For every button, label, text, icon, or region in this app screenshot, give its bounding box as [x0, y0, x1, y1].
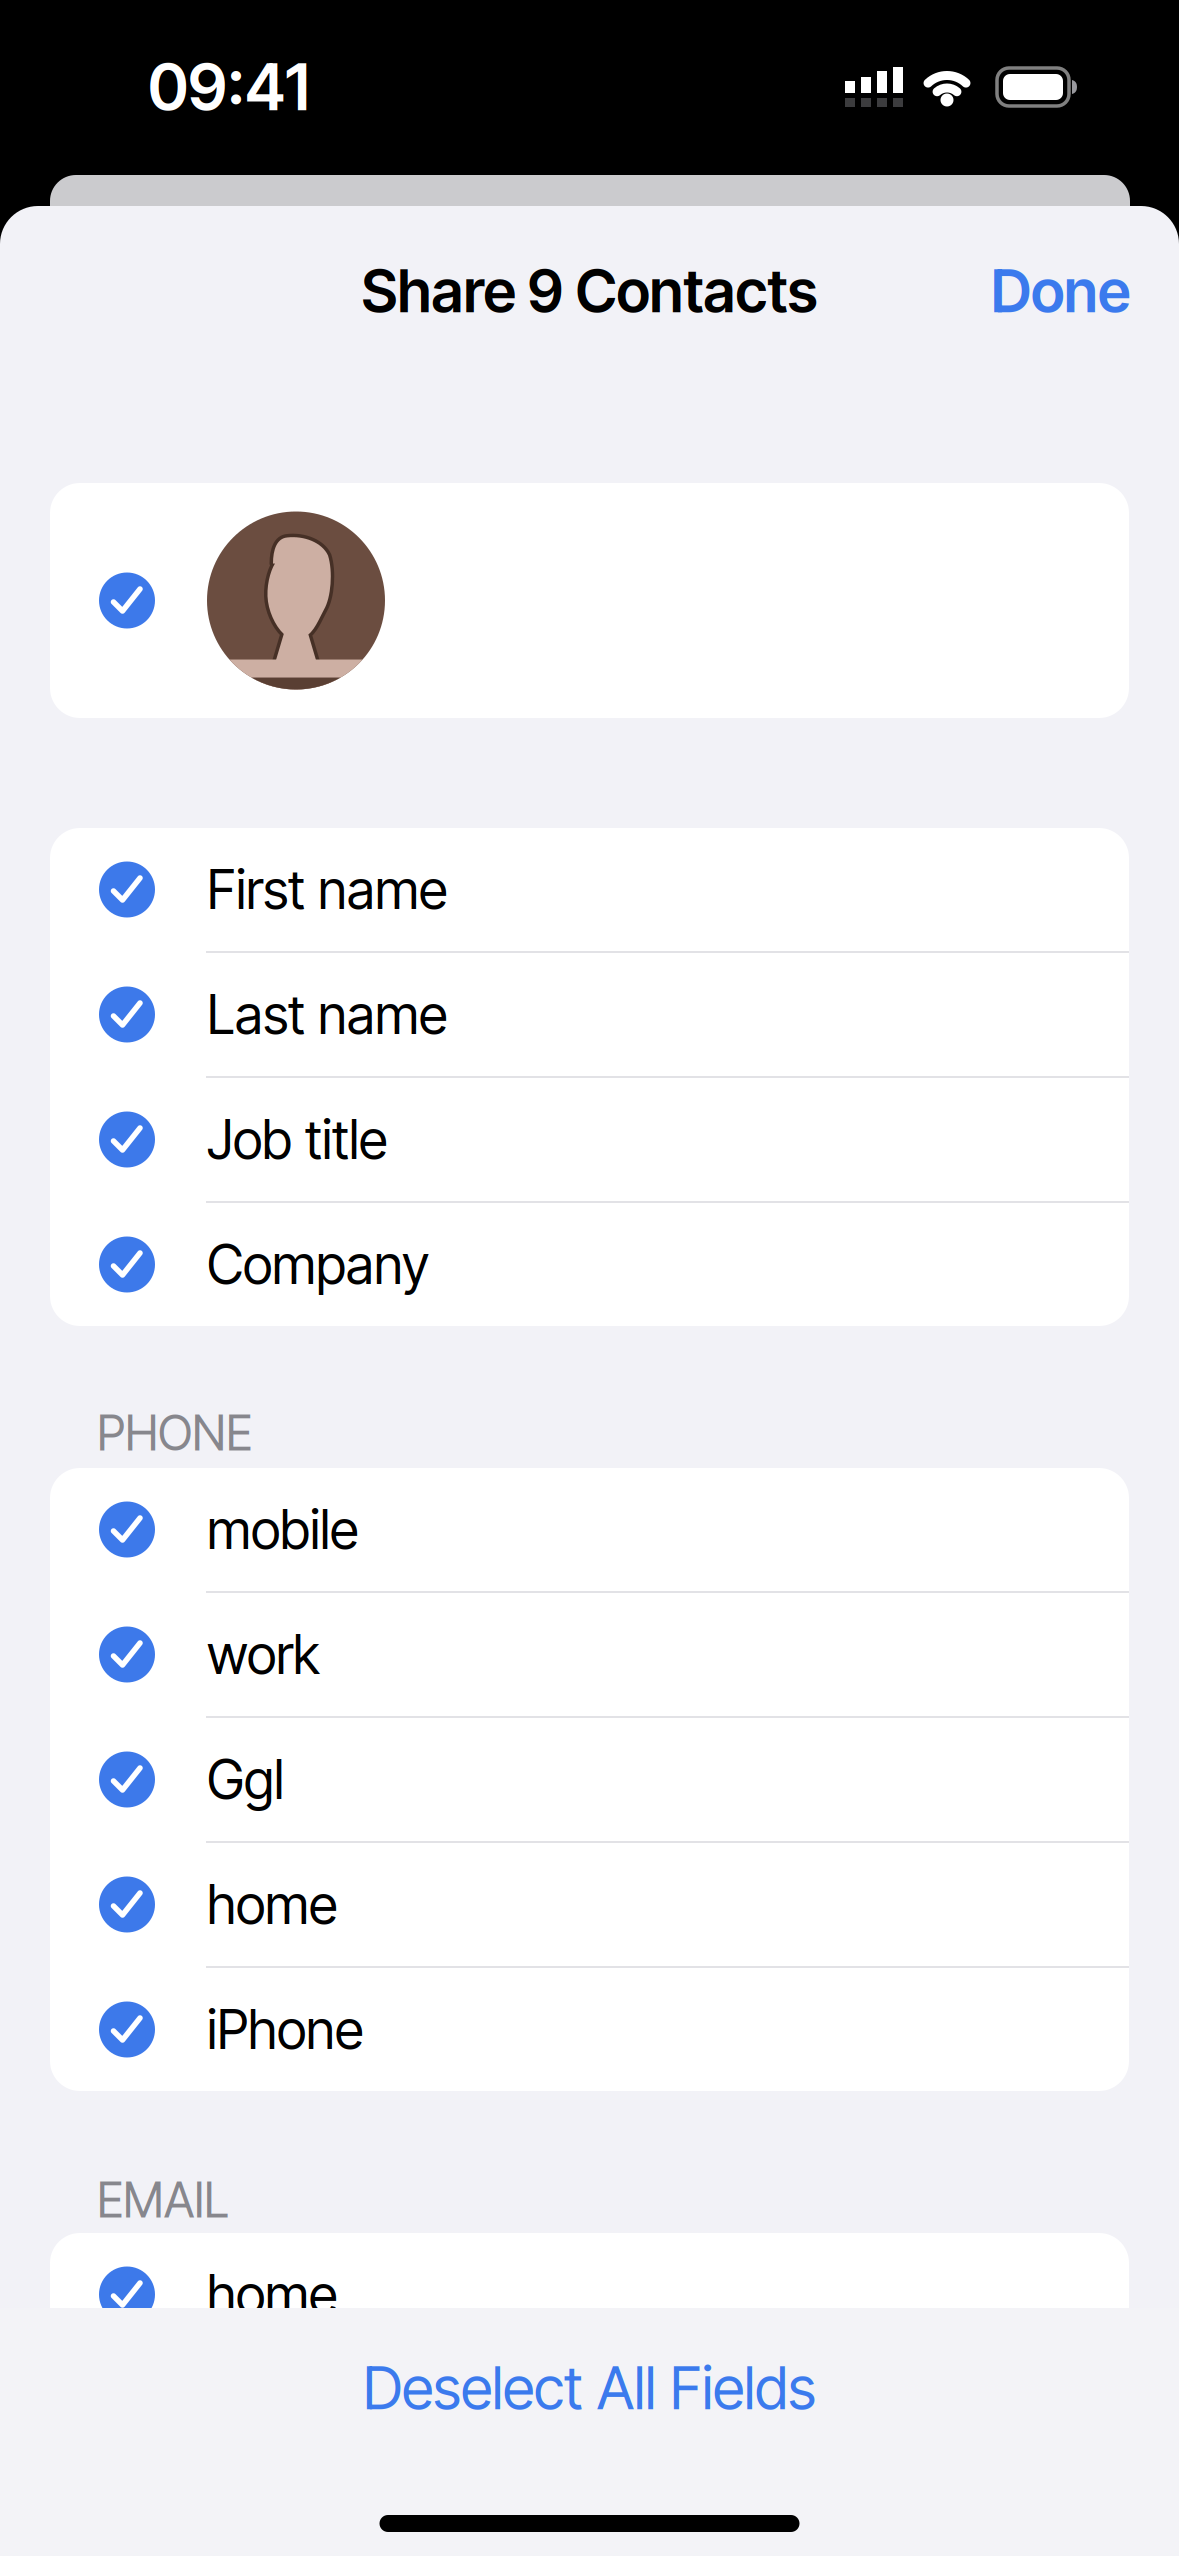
staticText: Done — [991, 255, 1130, 326]
staticText: home — [207, 2262, 337, 2327]
button[interactable]: Company — [50, 1203, 1129, 1326]
button[interactable]: Deselect All Fields — [363, 2352, 816, 2423]
button[interactable]: home — [50, 1843, 1129, 1966]
staticText: Last name — [207, 982, 447, 1047]
staticText: Deselect All Fields — [363, 2352, 816, 2423]
button[interactable]: work — [50, 1593, 1129, 1716]
button[interactable]: mobile — [50, 1468, 1129, 1591]
button[interactable]: work — [50, 2358, 1129, 2481]
staticText: Company — [207, 1232, 429, 1297]
button[interactable]: Contact photo — [50, 483, 1129, 718]
staticText: EMAIL — [97, 2171, 229, 2229]
staticText: iPhone — [207, 1997, 363, 2062]
staticText: Job title — [207, 1107, 387, 1172]
button[interactable]: Last name — [50, 953, 1129, 1076]
button[interactable]: home — [50, 2233, 1129, 2356]
button[interactable]: First name — [50, 828, 1129, 951]
staticText: 09:41 — [148, 48, 310, 126]
staticText: PHONE — [97, 1404, 252, 1462]
staticText: Ggl — [207, 1747, 284, 1812]
button[interactable]: iPhone — [50, 1968, 1129, 2091]
button[interactable]: Job title — [50, 1078, 1129, 1201]
staticText: Share 9 Contacts — [361, 255, 817, 326]
staticText: work — [207, 1622, 320, 1687]
button[interactable]: Ggl — [50, 1718, 1129, 1841]
staticText: mobile — [207, 1497, 358, 1562]
staticText: First name — [207, 857, 447, 922]
staticText: home — [207, 1872, 337, 1937]
button[interactable]: Done — [991, 255, 1130, 326]
